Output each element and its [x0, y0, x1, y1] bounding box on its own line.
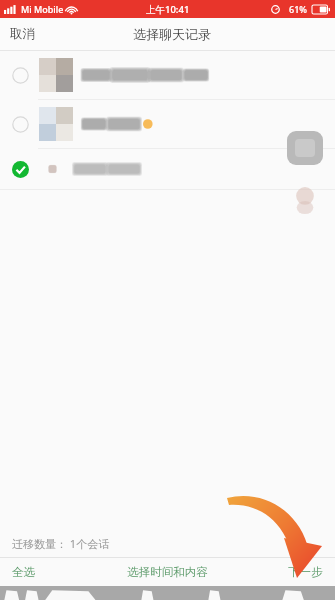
staticText: Mi Mobile — [21, 3, 64, 15]
staticText: 下一步 — [288, 565, 323, 579]
button[interactable]: 全选 — [0, 558, 101, 586]
staticText: 全选 — [12, 565, 35, 579]
staticText: 选择时间和内容 — [127, 565, 208, 579]
button[interactable] — [0, 100, 335, 148]
staticText: 选择聊天记录 — [133, 26, 211, 42]
button[interactable] — [0, 51, 335, 99]
button[interactable]: 取消 — [0, 20, 45, 48]
staticText: 上午10:41 — [146, 3, 190, 16]
button[interactable]: 下一步 — [233, 558, 335, 586]
button[interactable]: 选择时间和内容 — [101, 558, 233, 586]
button[interactable] — [0, 149, 335, 189]
staticText: 61% — [289, 3, 307, 15]
other: Preview thumbnail — [287, 131, 323, 165]
staticText: 迁移数量： 1个会话 — [12, 536, 110, 551]
staticText: 取消 — [10, 26, 35, 42]
